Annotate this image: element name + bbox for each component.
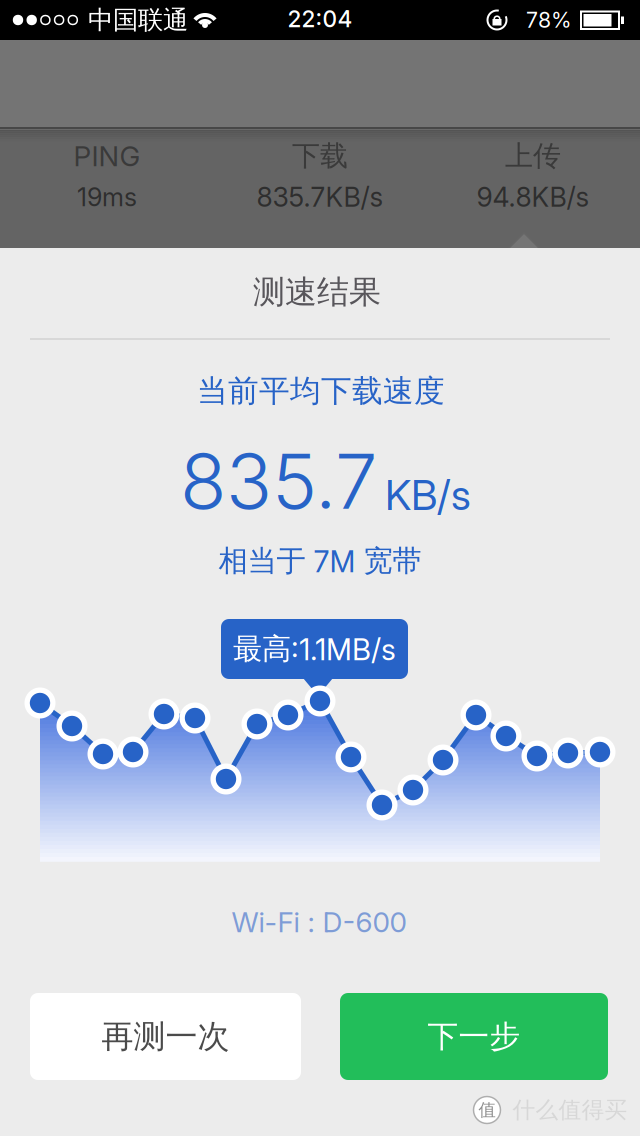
staticText: 下一步: [427, 1018, 520, 1055]
staticText: 上传: [505, 139, 561, 173]
staticText: 94.8KB/s: [476, 181, 589, 213]
staticText: KB/s: [385, 471, 471, 519]
staticText: 当前平均下载速度: [197, 372, 445, 410]
staticText: Wi-Fi : D-600: [231, 905, 406, 938]
staticText: 下载: [292, 139, 348, 173]
staticText: 835.7KB/s: [256, 181, 383, 213]
staticText: 再测一次: [101, 1017, 229, 1056]
staticText: 835.7: [180, 436, 378, 526]
button[interactable]: 再测一次: [30, 993, 301, 1080]
staticText: PING: [73, 139, 140, 172]
staticText: 最高:1.1MB/s: [233, 631, 396, 667]
staticText: 22:04: [287, 6, 352, 32]
staticText: 78%: [526, 7, 572, 33]
staticText: 值: [478, 1099, 495, 1121]
staticText: 中国联通: [88, 4, 188, 35]
staticText: 什么值得买: [512, 1096, 627, 1124]
staticText: 测速结果: [253, 272, 381, 312]
staticText: 相当于 7M 宽带: [218, 543, 421, 579]
staticText: 19ms: [77, 182, 137, 212]
button[interactable]: 下一步: [340, 993, 608, 1080]
